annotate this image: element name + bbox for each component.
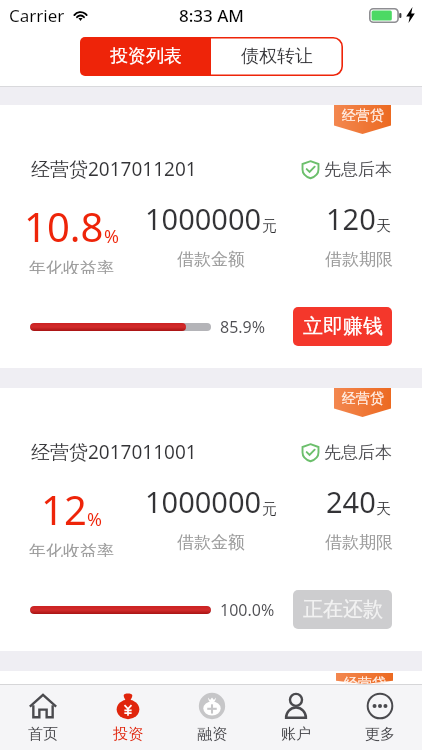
staticText: 12 bbox=[41, 482, 87, 536]
staticText: 元 bbox=[262, 217, 277, 236]
staticText: 经营贷 bbox=[344, 675, 386, 684]
staticText: Carrier bbox=[9, 4, 65, 27]
staticText: 借款期限 bbox=[325, 249, 393, 270]
staticText: 先息后本 bbox=[324, 442, 392, 463]
staticText: 借款期限 bbox=[325, 532, 393, 553]
button[interactable]: 首页 bbox=[0, 685, 85, 750]
button[interactable]: 投资 bbox=[85, 685, 170, 750]
button[interactable]: 立即赚钱 bbox=[293, 307, 392, 346]
staticText: 85.9% bbox=[220, 316, 266, 338]
staticText: 元 bbox=[262, 500, 277, 519]
staticText: 天 bbox=[376, 217, 391, 236]
staticText: 经营贷 bbox=[342, 107, 384, 125]
staticText: 1000000 bbox=[145, 482, 262, 521]
other: 融资 bbox=[198, 692, 226, 720]
staticText: 经营贷 bbox=[342, 390, 384, 408]
staticText: 240 bbox=[326, 482, 376, 521]
staticText: 经营贷2017011201 bbox=[31, 156, 197, 182]
staticText: 经营贷2017011001 bbox=[31, 439, 197, 465]
staticText: 1000000 bbox=[145, 199, 262, 238]
staticText: 100.0% bbox=[220, 599, 275, 621]
button[interactable]: 投资列表 bbox=[80, 37, 211, 76]
staticText: 年化收益率 bbox=[29, 258, 114, 274]
staticText: % bbox=[104, 224, 119, 249]
staticText: % bbox=[87, 507, 102, 532]
button[interactable]: 正在还款 bbox=[293, 590, 392, 629]
staticText: 借款金额 bbox=[177, 249, 245, 270]
staticText: 债权转让 bbox=[241, 45, 313, 68]
other: 更多 bbox=[366, 692, 394, 720]
button[interactable]: 更多 bbox=[338, 685, 422, 750]
staticText: 投资列表 bbox=[110, 45, 182, 68]
staticText: 立即赚钱 bbox=[303, 314, 383, 339]
staticText: 8:33 AM bbox=[179, 4, 244, 27]
staticText: 先息后本 bbox=[324, 159, 392, 180]
button[interactable]: 债权转让 bbox=[211, 37, 343, 76]
staticText: 融资 bbox=[197, 725, 227, 744]
staticText: 10.8 bbox=[24, 199, 104, 253]
staticText: 正在还款 bbox=[303, 597, 383, 622]
staticText: 首页 bbox=[28, 725, 58, 744]
staticText: 天 bbox=[376, 500, 391, 519]
other: 投资 bbox=[114, 692, 142, 720]
staticText: 投资 bbox=[113, 725, 143, 744]
staticText: 更多 bbox=[365, 725, 395, 744]
staticText: 年化收益率 bbox=[29, 541, 114, 557]
button[interactable]: 融资 bbox=[170, 685, 254, 750]
staticText: 120 bbox=[326, 199, 376, 238]
other: 首页 bbox=[29, 692, 57, 720]
staticText: 账户 bbox=[281, 725, 311, 744]
other: 账户 bbox=[282, 692, 310, 720]
staticText: 借款金额 bbox=[177, 532, 245, 553]
button[interactable]: 账户 bbox=[254, 685, 338, 750]
